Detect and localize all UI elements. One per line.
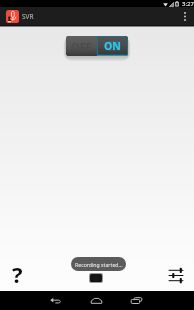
button[interactable]: Back <box>35 291 75 310</box>
button[interactable]: Recents <box>116 291 156 310</box>
button[interactable]: More options <box>176 7 194 25</box>
staticText: OFF <box>71 39 92 54</box>
button[interactable]: Settings <box>164 262 188 288</box>
button[interactable]: Help <box>5 259 29 285</box>
button[interactable]: Recording toggle <box>66 36 128 56</box>
staticText: ? <box>12 259 23 285</box>
button[interactable]: Home <box>76 291 116 310</box>
staticText: 3:27 <box>182 0 194 7</box>
button[interactable]: Record <box>77 273 115 310</box>
staticText: SVR <box>22 12 34 21</box>
staticText: ON <box>104 39 121 53</box>
staticText: Recording started... <box>75 261 123 268</box>
